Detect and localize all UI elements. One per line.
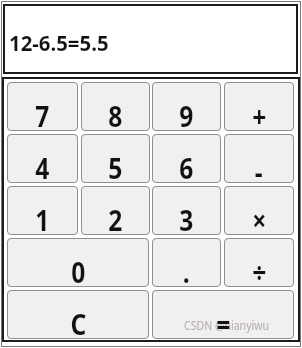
button[interactable]: 1	[7, 186, 78, 235]
staticText: 4	[35, 148, 50, 187]
staticText: 6	[179, 148, 194, 187]
button[interactable]: 2	[81, 186, 150, 235]
staticText: .	[183, 252, 190, 291]
button[interactable]: 5	[81, 134, 150, 183]
staticText: 8	[108, 96, 123, 135]
button[interactable]: +	[224, 82, 294, 131]
staticText: 2	[108, 200, 123, 239]
staticText: 3	[179, 200, 194, 239]
staticText: +	[252, 96, 267, 135]
staticText: C	[70, 304, 86, 343]
button[interactable]: -	[224, 134, 294, 183]
staticText: ÷	[252, 252, 267, 291]
staticText: 12-6.5=5.5	[9, 29, 109, 58]
staticText: 0	[71, 252, 86, 291]
button[interactable]	[152, 290, 294, 339]
button[interactable]: C	[7, 290, 149, 339]
button[interactable]: 12-6.5=5.5	[3, 4, 298, 74]
staticText: ×	[252, 200, 267, 239]
staticText: 7	[35, 96, 50, 135]
staticText: =	[216, 304, 231, 343]
staticText: 1	[35, 200, 50, 239]
button[interactable]: 7	[7, 82, 78, 131]
button[interactable]: 9	[152, 82, 221, 131]
staticText: 5	[108, 148, 123, 187]
button[interactable]: 6	[152, 134, 221, 183]
button[interactable]: ÷	[224, 238, 294, 287]
button[interactable]: 8	[81, 82, 150, 131]
button[interactable]: .	[152, 238, 221, 287]
staticText: 9	[179, 96, 194, 135]
button[interactable]: 4	[7, 134, 78, 183]
button[interactable]: 3	[152, 186, 221, 235]
staticText: -	[255, 152, 263, 191]
button[interactable]: 0	[7, 238, 149, 287]
staticText: CSDN @nianyiwu	[184, 317, 269, 333]
button[interactable]: ×	[224, 186, 294, 235]
